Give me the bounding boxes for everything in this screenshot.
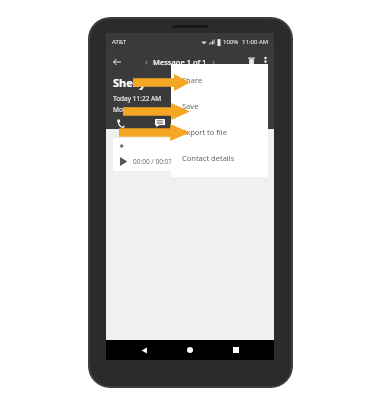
button[interactable]: Share <box>171 67 268 93</box>
staticText: Shelly <box>113 75 146 90</box>
staticText: Contact details <box>182 153 235 163</box>
staticText: 100% <box>223 38 239 46</box>
button[interactable]: Back <box>136 342 152 358</box>
button[interactable]: Export to file <box>171 119 268 145</box>
button[interactable]: Recent apps <box>228 342 244 358</box>
staticText: 11:00 AM <box>242 38 269 46</box>
staticText: Share <box>182 75 203 85</box>
button[interactable]: Speaker off <box>220 156 230 166</box>
button[interactable]: 00:00 / 00:07 <box>113 138 265 171</box>
button[interactable]: Next <box>209 58 218 67</box>
button[interactable]: Contact details <box>171 145 268 171</box>
button[interactable]: Save <box>171 93 268 119</box>
button[interactable]: Send message <box>153 117 167 129</box>
button[interactable]: Home <box>182 342 198 358</box>
button[interactable]: More options <box>259 55 272 68</box>
button[interactable]: Call <box>113 117 127 129</box>
staticText: Mobile <box>113 105 134 114</box>
staticText: Export to file <box>182 127 227 137</box>
staticText: AT&T <box>112 38 126 46</box>
staticText: Message 1 of 1 <box>153 57 207 67</box>
button[interactable]: Previous <box>142 58 151 67</box>
staticText: Today 11:22 AM <box>113 94 162 103</box>
staticText: 00:00 / 00:07 <box>133 157 173 166</box>
button[interactable]: Delete <box>244 54 259 69</box>
button[interactable]: Back <box>109 54 125 70</box>
staticText: Speaker OFF <box>178 157 217 166</box>
staticText: Save <box>182 101 199 111</box>
